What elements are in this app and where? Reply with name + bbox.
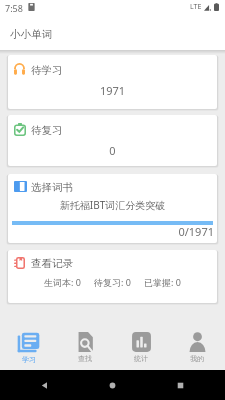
button[interactable]: 待复习 bbox=[8, 115, 217, 166]
staticText: 统计 bbox=[134, 354, 148, 363]
button[interactable]: Back bbox=[40, 381, 49, 390]
button[interactable]: 学习 bbox=[0, 322, 57, 372]
staticText: 小小单词 bbox=[10, 28, 52, 41]
staticText: 待复习: 0 bbox=[94, 276, 131, 288]
button[interactable]: 查看记录 bbox=[8, 250, 217, 303]
staticText: 1971 bbox=[8, 83, 217, 98]
button[interactable]: Home bbox=[108, 381, 117, 390]
staticText: LTE bbox=[190, 2, 202, 12]
staticText: 待学习 bbox=[31, 64, 63, 77]
button[interactable]: 选择词书 bbox=[8, 174, 217, 243]
button[interactable]: 我的 bbox=[169, 322, 225, 372]
staticText: 我的 bbox=[190, 354, 204, 363]
staticText: 0/1971 bbox=[8, 224, 214, 239]
staticText: 新托福IBT词汇分类突破 bbox=[8, 198, 217, 212]
staticText: 待复习 bbox=[31, 124, 63, 137]
staticText: 查找 bbox=[78, 354, 92, 363]
button[interactable]: Recents bbox=[176, 381, 185, 390]
staticText: 生词本: 0 bbox=[44, 276, 81, 288]
staticText: 选择词书 bbox=[31, 181, 73, 194]
button[interactable]: 统计 bbox=[113, 322, 169, 372]
staticText: 7:58 bbox=[5, 2, 23, 14]
staticText: 查看记录 bbox=[31, 257, 73, 270]
button[interactable]: 待学习 bbox=[8, 55, 217, 109]
button[interactable]: 查找 bbox=[57, 322, 113, 372]
staticText: 0 bbox=[8, 143, 217, 158]
staticText: 已掌握: 0 bbox=[144, 276, 181, 288]
staticText: 学习 bbox=[22, 355, 36, 364]
